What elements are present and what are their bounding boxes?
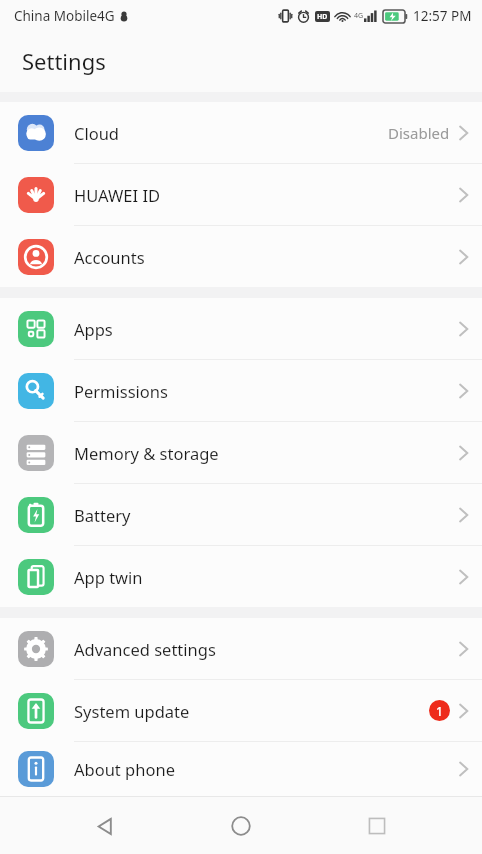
button[interactable]: HUAWEI ID bbox=[0, 164, 482, 225]
button[interactable]: App twin bbox=[0, 546, 482, 607]
button[interactable]: Back bbox=[74, 803, 136, 849]
staticText: 4G bbox=[354, 11, 364, 21]
button[interactable]: Memory & storage bbox=[0, 422, 482, 483]
button[interactable]: Accounts bbox=[0, 226, 482, 287]
button[interactable]: Advanced settings bbox=[0, 618, 482, 679]
button[interactable]: Battery bbox=[0, 484, 482, 545]
staticText: Advanced settings bbox=[74, 638, 216, 660]
staticText: System update bbox=[74, 700, 190, 722]
button[interactable]: Home bbox=[210, 803, 272, 849]
staticText: HUAWEI ID bbox=[74, 184, 161, 206]
button[interactable]: Recent apps bbox=[346, 803, 408, 849]
staticText: Permissions bbox=[74, 380, 168, 402]
staticText: Cloud bbox=[74, 122, 120, 144]
staticText: About phone bbox=[74, 758, 175, 780]
staticText: China Mobile4G bbox=[14, 7, 115, 25]
staticText: HD bbox=[317, 12, 328, 22]
staticText: Battery bbox=[74, 504, 131, 526]
staticText: Settings bbox=[22, 46, 106, 76]
staticText: Accounts bbox=[74, 246, 145, 268]
staticText: 1 bbox=[436, 703, 443, 719]
staticText: Disabled bbox=[388, 123, 450, 143]
staticText: App twin bbox=[74, 566, 143, 588]
staticText: Apps bbox=[74, 318, 113, 340]
staticText: 12:57 PM bbox=[413, 7, 472, 25]
button[interactable]: Apps bbox=[0, 298, 482, 359]
button[interactable]: Permissions bbox=[0, 360, 482, 421]
button[interactable]: About phone bbox=[0, 742, 482, 796]
staticText: Memory & storage bbox=[74, 442, 219, 464]
button[interactable]: System update bbox=[0, 680, 482, 741]
button[interactable]: Cloud bbox=[0, 102, 482, 163]
